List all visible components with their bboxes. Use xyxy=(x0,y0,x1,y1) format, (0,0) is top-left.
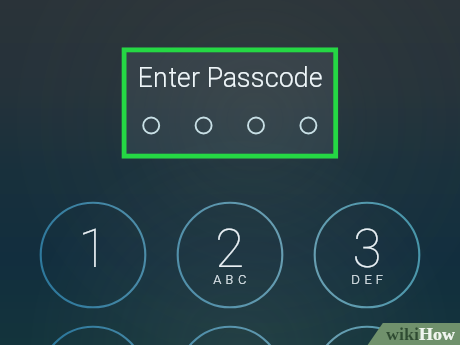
button[interactable]: iPhone lock screen Enter Passcode xyxy=(0,0,460,345)
